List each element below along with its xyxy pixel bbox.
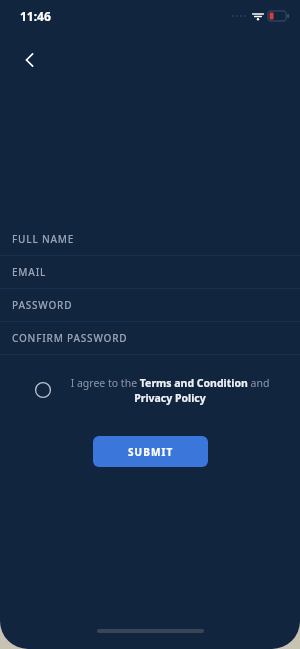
- button[interactable]: SUBMIT: [93, 436, 208, 467]
- button[interactable]: FULL NAME: [0, 223, 300, 256]
- staticText: FULL NAME: [12, 232, 75, 246]
- button[interactable]: Back: [10, 40, 50, 80]
- staticText: I agree to the Terms and Condition and P…: [68, 376, 272, 405]
- button[interactable]: Agree to terms checkbox: [28, 375, 58, 405]
- staticText: EMAIL: [12, 265, 47, 279]
- staticText: 11:46: [20, 8, 51, 24]
- button[interactable]: PASSWORD: [0, 289, 300, 322]
- staticText: SUBMIT: [128, 445, 174, 459]
- button[interactable]: EMAIL: [0, 256, 300, 289]
- button[interactable]: CONFIRM PASSWORD: [0, 322, 300, 355]
- staticText: PASSWORD: [12, 298, 73, 312]
- staticText: CONFIRM PASSWORD: [12, 331, 128, 345]
